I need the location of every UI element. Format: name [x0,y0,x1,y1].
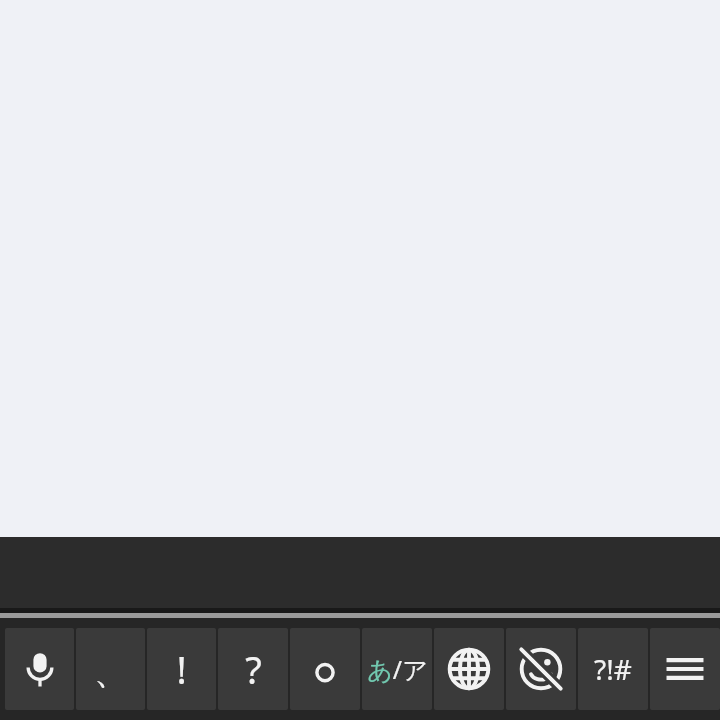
button[interactable]: Menu [650,628,720,710]
button[interactable]: Exclamation mark [147,628,216,710]
button[interactable]: Emoji disabled [506,628,576,710]
staticText: ! [176,643,187,695]
button[interactable]: Japanese comma [76,628,145,710]
button[interactable]: Question mark [218,628,288,710]
button[interactable]: Japanese period [290,628,360,710]
staticText: 、 [94,651,128,694]
staticText: あ/ア [367,652,428,686]
button[interactable]: Symbols [578,628,648,710]
button[interactable]: Change language [434,628,504,710]
staticText: ?!# [594,650,632,688]
button[interactable]: Voice input [5,628,74,710]
staticText: ? [245,643,262,695]
button[interactable]: Switch kana mode [362,628,432,710]
